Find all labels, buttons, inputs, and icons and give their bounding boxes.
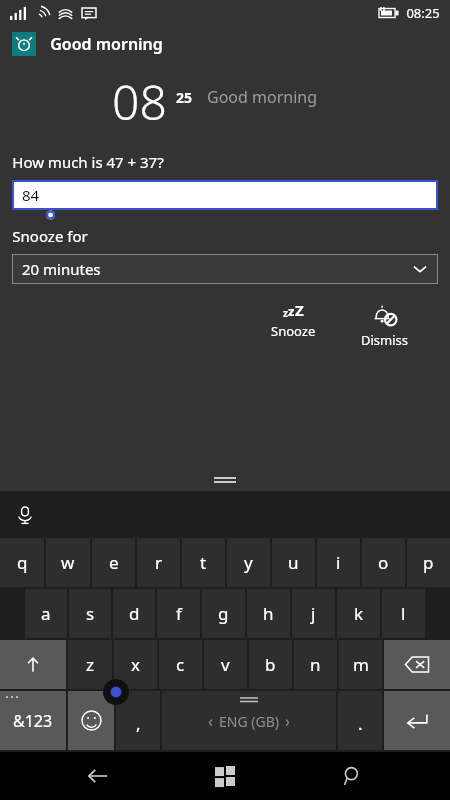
staticText: How much is 47 + 37? — [12, 152, 164, 172]
button[interactable]: d — [113, 589, 155, 638]
staticText: c — [176, 653, 185, 676]
button[interactable]: . — [338, 691, 382, 750]
staticText: o — [378, 551, 389, 574]
staticText: 08:25 — [406, 4, 440, 22]
button[interactable]: ‹ — [162, 691, 336, 750]
button[interactable]: j — [292, 589, 335, 638]
staticText: &123 — [13, 710, 53, 732]
button[interactable]: g — [202, 589, 245, 638]
button[interactable]: q — [0, 538, 44, 587]
staticText: . — [358, 712, 363, 735]
staticText: 08 — [112, 69, 167, 134]
staticText: d — [129, 602, 140, 625]
button[interactable]: p — [407, 538, 450, 587]
button[interactable]: Backspace — [384, 640, 450, 689]
staticText: x — [131, 653, 140, 676]
staticText: Good morning — [50, 33, 163, 55]
button[interactable]: i — [317, 538, 360, 587]
button[interactable]: k — [337, 589, 380, 638]
staticText: u — [288, 551, 299, 574]
staticText: r — [155, 551, 163, 574]
staticText: z — [288, 302, 295, 320]
staticText: b — [265, 653, 276, 676]
staticText: ‹ — [208, 710, 213, 732]
button[interactable]: l — [382, 589, 425, 638]
button[interactable]: , — [116, 691, 160, 750]
staticText: z — [86, 653, 94, 676]
staticText: s — [86, 602, 95, 625]
button[interactable]: x — [114, 640, 157, 689]
button[interactable]: Search — [323, 752, 383, 800]
staticText: w — [61, 551, 75, 574]
staticText: j — [311, 602, 316, 625]
button[interactable]: t — [182, 538, 225, 587]
staticText: i — [336, 551, 341, 574]
button[interactable]: o — [362, 538, 405, 587]
staticText: z — [283, 306, 288, 320]
staticText: Z — [295, 300, 304, 320]
staticText: t — [200, 551, 207, 574]
button[interactable]: h — [247, 589, 290, 638]
button[interactable]: Emoji — [68, 691, 114, 750]
staticText: 84 — [22, 185, 40, 205]
staticText: Snooze — [271, 322, 316, 340]
button[interactable]: b — [249, 640, 292, 689]
button[interactable]: c — [159, 640, 202, 689]
staticText: Dismiss — [361, 331, 409, 349]
button[interactable]: &123 — [0, 691, 66, 750]
button[interactable]: u — [272, 538, 315, 587]
button[interactable]: Voice input — [10, 500, 40, 530]
button[interactable]: y — [227, 538, 270, 587]
staticText: › — [285, 710, 290, 732]
button[interactable]: r — [137, 538, 180, 587]
staticText: ENG (GB) — [219, 712, 279, 731]
staticText: k — [354, 602, 364, 625]
button[interactable]: a — [25, 589, 67, 638]
staticText: v — [221, 653, 230, 676]
button[interactable]: Back — [68, 752, 128, 800]
button[interactable]: e — [92, 538, 135, 587]
staticText: l — [401, 602, 406, 625]
button[interactable]: Dismiss — [348, 298, 422, 353]
button[interactable]: n — [294, 640, 337, 689]
button[interactable]: Enter — [384, 691, 450, 750]
staticText: g — [218, 602, 229, 625]
button[interactable]: s — [69, 589, 111, 638]
button[interactable]: z — [256, 298, 330, 366]
button[interactable]: 84 — [12, 180, 438, 210]
button[interactable]: Shift — [0, 640, 66, 689]
button[interactable]: f — [157, 589, 200, 638]
staticText: m — [353, 653, 369, 676]
staticText: , — [136, 712, 141, 735]
staticText: q — [17, 551, 28, 574]
staticText: Snooze for — [12, 226, 88, 246]
staticText: a — [41, 602, 51, 625]
staticText: h — [263, 602, 274, 625]
staticText: y — [244, 551, 253, 574]
button[interactable]: Start — [195, 752, 255, 800]
button[interactable]: m — [339, 640, 382, 689]
staticText: 20 minutes — [22, 259, 101, 279]
staticText: e — [109, 551, 119, 574]
button[interactable]: z — [68, 640, 112, 689]
staticText: 25 — [176, 88, 193, 107]
staticText: n — [310, 653, 321, 676]
staticText: f — [176, 602, 182, 625]
button[interactable]: w — [46, 538, 90, 587]
staticText: p — [423, 551, 434, 574]
button[interactable]: 20 minutes — [12, 254, 438, 284]
button[interactable]: v — [204, 640, 247, 689]
staticText: Good morning — [207, 86, 318, 108]
